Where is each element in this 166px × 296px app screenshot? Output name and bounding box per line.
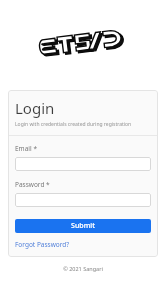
staticText: Login with credentials created during re… [15,121,132,128]
staticText: Submit [71,221,95,231]
button[interactable]: Forgot Password? [15,240,70,249]
button[interactable] [15,193,151,207]
staticText: Email * [15,144,37,153]
staticText: © 2021 Sangari [63,265,103,272]
button[interactable]: Submit [15,219,151,233]
other: ETSIS logo [37,32,129,58]
button[interactable] [15,157,151,171]
staticText: Password * [15,180,50,189]
staticText: Login [15,98,55,118]
staticText: Forgot Password? [15,240,70,249]
